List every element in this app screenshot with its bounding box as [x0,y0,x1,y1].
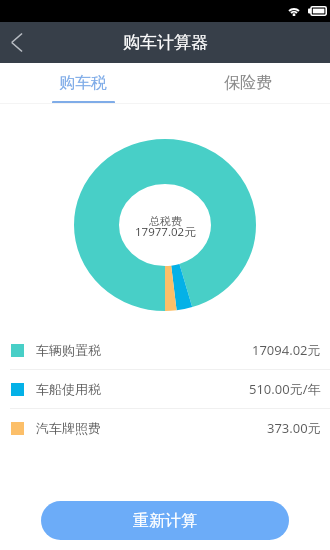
button[interactable]: Back [0,22,33,63]
button[interactable]: 保险费 [165,63,330,103]
staticText: 购车税 [59,73,107,93]
staticText: 购车计算器 [123,32,208,53]
staticText: 保险费 [224,73,272,93]
button[interactable]: 车辆购置税 [0,331,330,369]
button[interactable]: 重新计算 [41,501,289,540]
staticText: 重新计算 [133,511,197,531]
button[interactable]: 车船使用税 [0,370,330,408]
button[interactable]: 购车税 [0,63,165,103]
staticText: 车船使用税 [36,381,101,397]
staticText: 373.00元 [267,419,321,437]
button[interactable]: 汽车牌照费 [0,409,330,447]
staticText: 510.00元/年 [249,380,321,398]
staticText: 总税费 [149,214,182,228]
staticText: 17094.02元 [252,341,321,359]
staticText: 17977.02元 [135,224,196,240]
staticText: 汽车牌照费 [36,420,101,436]
staticText: 车辆购置税 [36,342,101,358]
